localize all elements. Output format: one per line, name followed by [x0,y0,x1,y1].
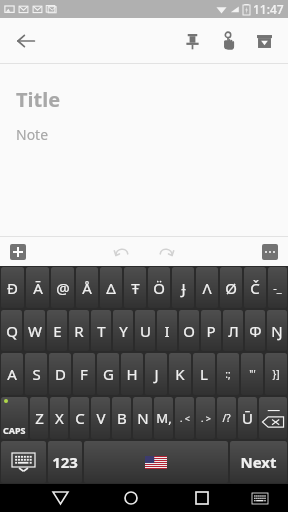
button[interactable]: Pin [174,23,210,59]
button[interactable]: Ø [220,267,242,308]
button[interactable]: A [1,353,23,395]
staticText: K [175,364,185,384]
button[interactable]: Back [8,23,44,59]
button[interactable]: Add [10,244,26,260]
staticText: P [206,321,216,341]
button[interactable]: Ö [148,267,170,308]
button[interactable]: Delete [259,397,287,439]
button[interactable]: Switch keyboard [245,484,275,512]
staticText: X [55,408,64,428]
button[interactable]: "' [241,353,263,395]
button[interactable]: Home [114,484,148,512]
staticText: L [200,364,208,384]
button[interactable]: E [47,310,67,351]
button[interactable]: P [201,310,221,351]
button[interactable]: Q [1,310,22,351]
button[interactable]: 123 [48,441,82,483]
button[interactable]: > [196,397,215,439]
button[interactable]: L [193,353,215,395]
staticText: . > [201,412,211,424]
staticText: E [53,321,62,341]
staticText: Δ [106,278,116,298]
button[interactable]: R [69,310,89,351]
button[interactable]: Z [30,397,48,439]
button[interactable]: G [97,353,119,395]
staticText: CAPS [3,424,26,436]
staticText: R [74,321,84,341]
button[interactable]: Archive [246,23,282,59]
button[interactable]: Δ [100,267,122,308]
button[interactable]: Title [16,86,61,113]
staticText: S [32,364,41,384]
staticText: H [126,364,138,384]
button[interactable]: -_ [268,267,287,308]
button[interactable]: }] [265,353,287,395]
staticText: Ŋ [271,321,283,341]
button[interactable]: J [145,353,167,395]
button[interactable]: S [25,353,47,395]
button[interactable]: Ŧ [124,267,146,308]
button[interactable]: More options [262,244,278,260]
button[interactable]: Ɉ [172,267,194,308]
button[interactable]: M, [154,397,173,439]
staticText: U [140,321,151,341]
button[interactable]: O [179,310,199,351]
button[interactable]: Redo [155,241,177,263]
button[interactable]: Back [43,484,77,512]
button[interactable]: V [91,397,110,439]
button[interactable]: Space [84,441,228,483]
button[interactable]: Λ [196,267,218,308]
button[interactable]: Next [230,441,287,483]
button[interactable]: /? [217,397,236,439]
button[interactable]: Ф [245,310,265,351]
button[interactable]: Č [244,267,266,308]
button[interactable]: W [24,310,45,351]
staticText: Ö [153,278,165,298]
staticText: Å [82,278,92,298]
staticText: Č [250,278,260,298]
staticText: /? [222,411,231,425]
staticText: Ɉ [181,278,186,298]
button[interactable]: Undo [111,241,133,263]
button[interactable]: Keyboard settings [1,441,46,483]
staticText: T [97,321,106,341]
button[interactable]: H [121,353,143,395]
staticText: Next [240,452,277,472]
button[interactable]: N [133,397,152,439]
button[interactable]: @ [51,267,74,308]
staticText: . < [180,412,190,424]
staticText: I [164,321,170,341]
staticText: Ū [242,408,253,428]
button[interactable]: Л [223,310,243,351]
button[interactable]: C [70,397,89,439]
button[interactable]: Ū [238,397,257,439]
staticText: Λ [202,278,212,298]
button[interactable]: K [169,353,191,395]
staticText: Y [119,321,128,341]
button[interactable]: U [135,310,155,351]
button[interactable]: Ā [26,267,49,308]
staticText: Z [35,408,44,428]
button[interactable]: Å [76,267,98,308]
button[interactable]: B [112,397,131,439]
staticText: Ā [33,278,43,298]
button[interactable]: < [175,397,194,439]
staticText: O [183,321,195,341]
button[interactable]: Y [113,310,133,351]
button[interactable]: :; [217,353,239,395]
staticText: Q [6,321,18,341]
staticText: -_ [273,280,282,295]
button[interactable]: Ŋ [267,310,287,351]
button[interactable]: I [157,310,177,351]
button[interactable]: Draw [210,23,246,59]
button[interactable]: Ð [1,267,24,308]
button[interactable]: T [91,310,111,351]
button[interactable]: Note [16,125,49,144]
button[interactable]: D [49,353,71,395]
button[interactable]: F [73,353,95,395]
button[interactable]: CAPS [1,397,28,439]
staticText: A [7,364,17,384]
staticText: F [80,364,88,384]
button[interactable]: X [50,397,68,439]
button[interactable]: Recent apps [185,484,219,512]
